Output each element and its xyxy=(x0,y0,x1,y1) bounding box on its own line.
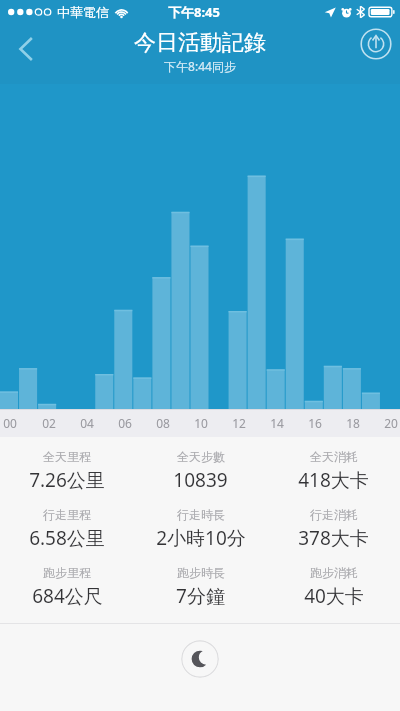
staticText: 跑步消耗 xyxy=(310,565,358,580)
staticText: 今日活動記錄 xyxy=(134,29,266,57)
staticText: 下午8:44同步 xyxy=(164,58,236,74)
staticText: 40大卡 xyxy=(304,583,364,609)
staticText: 行走時長 xyxy=(177,507,225,522)
button[interactable]: 跑步消耗 xyxy=(267,565,400,609)
button[interactable]: Sleep xyxy=(181,640,219,678)
staticText: 00 xyxy=(3,415,17,431)
button[interactable]: 全天消耗 xyxy=(267,449,400,493)
staticText: 下午8:45 xyxy=(168,3,220,21)
staticText: 02 xyxy=(42,415,56,431)
staticText: 2小時10分 xyxy=(156,525,246,551)
staticText: 行走消耗 xyxy=(310,507,358,522)
button[interactable]: 跑步時長 xyxy=(134,565,267,609)
staticText: 12 xyxy=(232,415,246,431)
staticText: 7分鐘 xyxy=(176,583,225,609)
staticText: 418大卡 xyxy=(298,467,369,493)
staticText: 10 xyxy=(194,415,208,431)
button[interactable]: Back xyxy=(0,24,52,74)
button[interactable]: 行走消耗 xyxy=(267,507,400,551)
staticText: 6.58公里 xyxy=(29,525,105,551)
staticText: 10839 xyxy=(173,467,228,493)
staticText: 14 xyxy=(270,415,284,431)
button[interactable]: 行走時長 xyxy=(134,507,267,551)
button[interactable]: Share xyxy=(360,28,392,60)
staticText: 全天里程 xyxy=(43,449,91,464)
button[interactable]: 行走里程 xyxy=(0,507,134,551)
staticText: 中華電信 xyxy=(57,4,109,20)
button[interactable]: 跑步里程 xyxy=(0,565,134,609)
staticText: 跑步時長 xyxy=(177,565,225,580)
staticText: 16 xyxy=(308,415,322,431)
button[interactable]: 全天里程 xyxy=(0,449,134,493)
staticText: 04 xyxy=(80,415,94,431)
button[interactable]: 全天步數 xyxy=(134,449,267,493)
staticText: 20 xyxy=(384,415,398,431)
staticText: 06 xyxy=(118,415,132,431)
staticText: 全天消耗 xyxy=(310,449,358,464)
staticText: 跑步里程 xyxy=(43,565,91,580)
staticText: 684公尺 xyxy=(32,583,103,609)
staticText: 全天步數 xyxy=(177,449,225,464)
staticText: 378大卡 xyxy=(298,525,369,551)
staticText: 7.26公里 xyxy=(29,467,105,493)
staticText: 行走里程 xyxy=(43,507,91,522)
staticText: 18 xyxy=(346,415,360,431)
staticText: 08 xyxy=(156,415,170,431)
